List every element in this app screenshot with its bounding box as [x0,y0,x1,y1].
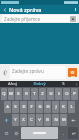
staticText: M [62,117,66,123]
staticText: W [9,91,13,97]
button[interactable]: S [12,101,19,113]
button[interactable]: More suggestions [73,81,79,87]
staticText: Ahoj [8,81,17,87]
button[interactable]: J [52,101,59,113]
button[interactable]: Space [21,127,58,139]
staticText: K [62,104,65,110]
staticText: I [58,91,60,97]
button[interactable]: Shift [1,114,11,126]
staticText: Z [41,91,44,97]
staticText: S [14,104,17,110]
button[interactable]: E [15,88,22,100]
button[interactable]: D [20,101,27,113]
button[interactable]: More options [71,5,79,14]
button[interactable]: N [52,114,59,126]
staticText: H [46,104,50,110]
button[interactable]: Q [1,88,7,100]
staticText: O [65,91,69,97]
staticText: P [73,91,76,97]
button[interactable]: Send [68,68,77,77]
button[interactable]: A [4,101,11,113]
button[interactable]: Settings [12,127,20,139]
button[interactable]: Y [12,114,19,126]
staticText: Zadejte zprávu [12,68,44,74]
button[interactable]: Dobrý [25,81,54,87]
button[interactable]: Backspace [68,114,78,126]
staticText: A [6,104,9,110]
staticText: R [25,91,28,97]
button[interactable]: O [63,88,70,100]
staticText: B [46,117,49,123]
staticText: E [17,91,20,97]
button[interactable]: R [23,88,30,100]
staticText: V [38,117,41,123]
button[interactable]: Enter [68,127,78,139]
button[interactable]: W [8,88,14,100]
button[interactable]: G [36,101,43,113]
button[interactable]: B [44,114,51,126]
staticText: U [49,91,53,97]
staticText: D [22,104,26,110]
staticText: Zadejte příjemce [4,16,41,22]
button[interactable]: U [47,88,54,100]
staticText: F [30,104,33,110]
button[interactable]: Z [39,88,46,100]
button[interactable]: P [71,88,78,100]
staticText: Y [14,117,17,123]
button[interactable]: I [55,88,62,100]
staticText: S [62,81,65,87]
button[interactable]: K [60,101,67,113]
staticText: Dobrý [33,81,46,87]
button[interactable]: T [31,88,38,100]
staticText: X [22,117,25,123]
staticText: C [30,117,33,123]
button[interactable]: V [36,114,43,126]
button[interactable]: Add contact [70,16,76,22]
button[interactable]: X [20,114,27,126]
button[interactable]: Back [0,5,9,14]
staticText: J [55,104,57,110]
button[interactable]: C [28,114,35,126]
button[interactable]: F [28,101,35,113]
staticText: Q [2,91,6,97]
staticText: G [38,104,42,110]
button[interactable]: M [60,114,67,126]
button[interactable]: Period [59,127,67,139]
staticText: L [70,104,73,110]
button[interactable]: Ahoj [0,81,25,87]
button[interactable]: Zadejte zprávu [10,66,66,79]
staticText: T [33,91,36,97]
button[interactable]: Attach [1,68,10,77]
button[interactable]: L [68,101,75,113]
button[interactable]: Zadejte příjemce [2,15,77,22]
button[interactable]: Symbols [1,127,11,139]
staticText: N [54,117,58,123]
button[interactable]: H [44,101,51,113]
staticText: Nová zpráva [9,6,42,13]
button[interactable]: S [54,81,73,87]
